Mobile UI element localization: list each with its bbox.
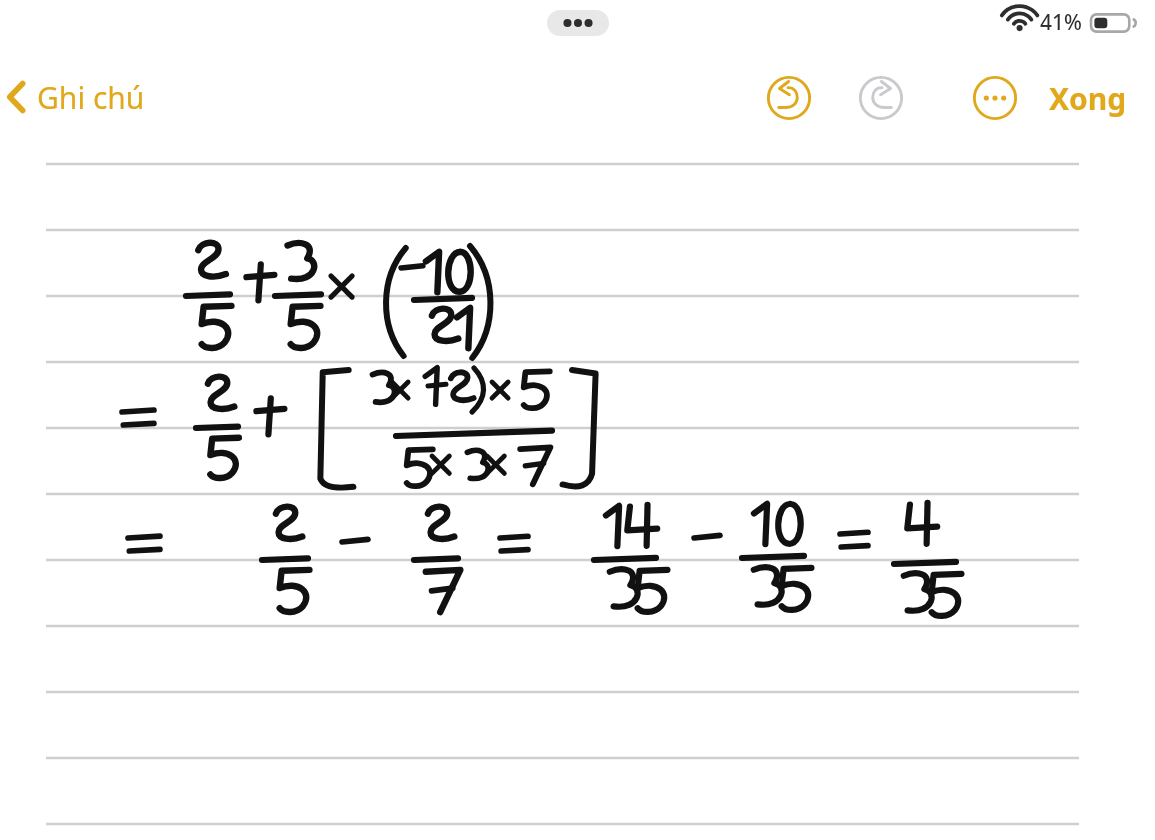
button[interactable]: Dynamic island [547,10,609,36]
button[interactable]: Redo [853,70,909,126]
button[interactable]: Undo [761,70,817,126]
button[interactable]: Xong [1043,72,1133,125]
button[interactable]: Ghi chú [0,72,155,122]
button[interactable]: More options [967,70,1023,126]
staticText: 41% [1040,8,1082,37]
staticText: Xong [1049,78,1127,119]
staticText: Ghi chú [37,77,145,118]
